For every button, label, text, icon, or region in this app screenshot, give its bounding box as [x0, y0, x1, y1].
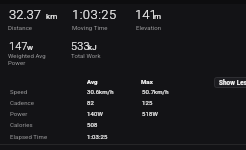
staticText: 533	[71, 40, 90, 53]
staticText: 147	[9, 40, 28, 53]
staticText: 1:03:25	[72, 7, 117, 22]
staticText: 30.6km/h	[87, 88, 114, 95]
staticText: kJ	[88, 43, 98, 52]
staticText: Max	[141, 78, 153, 85]
staticText: Power	[8, 59, 26, 66]
staticText: 32.37	[9, 7, 41, 22]
staticText: Elapsed Time	[10, 133, 48, 140]
staticText: Weighted Avg	[8, 52, 46, 59]
staticText: 508	[87, 121, 98, 128]
staticText: Power	[10, 110, 28, 117]
staticText: m	[154, 12, 162, 21]
staticText: Calories	[10, 121, 33, 128]
staticText: Avg	[87, 78, 98, 85]
staticText: Moving Time	[72, 24, 108, 31]
staticText: 125	[142, 99, 153, 106]
staticText: 50.7km/h	[142, 88, 169, 95]
staticText: 518W	[142, 110, 158, 117]
staticText: Show Less	[219, 79, 246, 86]
staticText: 140W	[87, 110, 103, 117]
button[interactable]: Show Less	[214, 77, 246, 88]
staticText: 1:03:25	[87, 133, 108, 140]
staticText: 82	[87, 99, 94, 106]
staticText: Elevation	[136, 24, 162, 31]
staticText: Distance	[8, 24, 33, 31]
staticText: Speed	[10, 88, 28, 95]
staticText: w	[27, 43, 34, 52]
staticText: Total Work	[71, 52, 101, 59]
staticText: Cadence	[10, 99, 35, 106]
staticText: km	[46, 12, 58, 21]
staticText: 141	[135, 7, 157, 22]
